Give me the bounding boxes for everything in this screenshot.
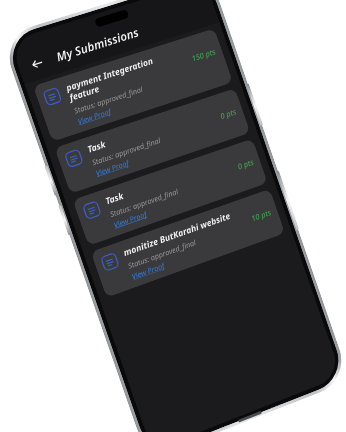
staticText: Status: approved_final: [108, 186, 180, 219]
staticText: View Proof: [76, 106, 112, 126]
button[interactable]: View Proof: [76, 106, 112, 126]
other: Submission: [64, 148, 84, 168]
staticText: My Submissions: [54, 24, 141, 65]
staticText: Status: approved_final: [126, 237, 197, 271]
other: Submission: [42, 87, 62, 106]
staticText: 0 pts: [218, 106, 237, 121]
staticText: Task: [86, 138, 107, 156]
staticText: 150 pts: [189, 46, 217, 64]
staticText: View Proof: [94, 157, 130, 178]
other: Submission: [100, 252, 120, 272]
button[interactable]: View Proof: [130, 260, 166, 281]
button[interactable]: Back: [24, 51, 50, 77]
button[interactable]: Submission: [72, 138, 268, 246]
button[interactable]: Submission: [33, 28, 233, 142]
staticText: View Proof: [112, 209, 148, 230]
staticText: Status: approved_final: [72, 84, 144, 116]
button[interactable]: Submission: [54, 88, 250, 194]
staticText: payment Integeration feature: [64, 47, 184, 104]
staticText: View Proof: [130, 260, 166, 281]
staticText: 0 pts: [236, 157, 255, 172]
button[interactable]: View Proof: [94, 157, 130, 178]
staticText: monitize ButKarahi website: [122, 210, 232, 259]
button[interactable]: Submission: [91, 189, 285, 298]
button[interactable]: View Proof: [112, 209, 148, 230]
staticText: Task: [104, 190, 125, 207]
staticText: Status: approved_final: [90, 135, 162, 167]
other: Submission: [82, 200, 102, 220]
staticText: 10 pts: [250, 207, 272, 223]
